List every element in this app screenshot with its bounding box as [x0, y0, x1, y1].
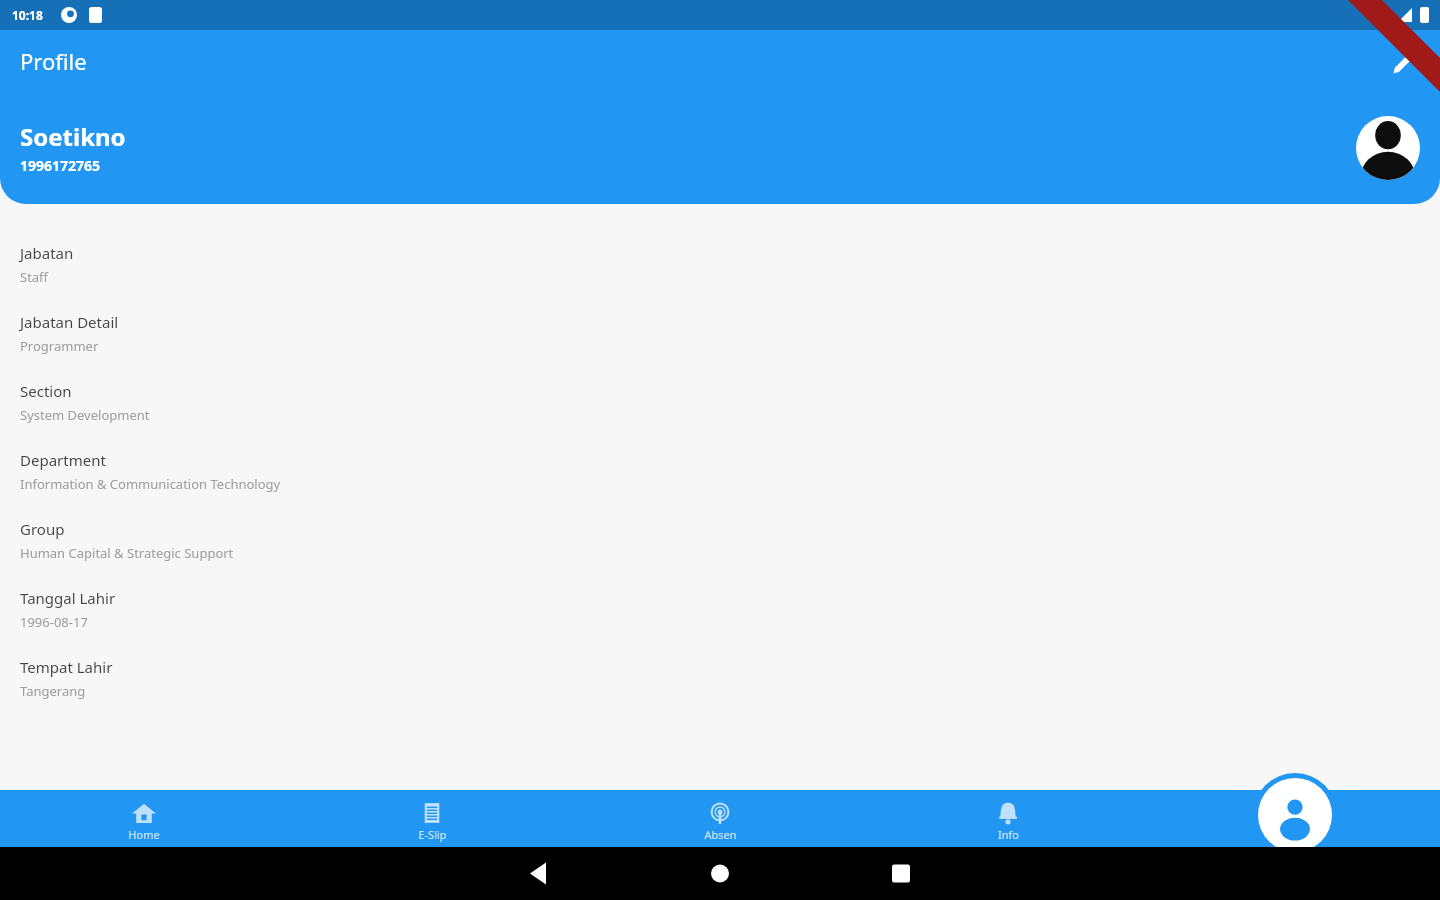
- button[interactable]: Section: [0, 368, 1440, 437]
- button[interactable]: Group: [0, 506, 1440, 575]
- staticText: Section: [20, 381, 72, 401]
- staticText: Profile: [20, 46, 87, 76]
- staticText: Jabatan Detail: [20, 312, 119, 332]
- staticText: Tangerang: [20, 682, 86, 700]
- button[interactable]: Home: [0, 796, 288, 842]
- staticText: Tempat Lahir: [20, 657, 113, 677]
- staticText: Jabatan: [20, 243, 74, 263]
- staticText: 10:18: [12, 7, 43, 23]
- staticText: Information & Communication Technology: [20, 475, 281, 493]
- staticText: Soetikno: [20, 120, 126, 153]
- staticText: Absen: [704, 827, 737, 842]
- staticText: System Development: [20, 406, 150, 424]
- staticText: Human Capital & Strategic Support: [20, 544, 234, 562]
- button[interactable]: Absen: [576, 796, 864, 842]
- staticText: 1996172765: [20, 156, 101, 175]
- button[interactable]: Tempat Lahir: [0, 644, 1440, 713]
- button[interactable]: Department: [0, 437, 1440, 506]
- button[interactable]: Jabatan Detail: [0, 299, 1440, 368]
- staticText: 1996-08-17: [20, 613, 88, 631]
- staticText: E-Slip: [418, 827, 447, 842]
- staticText: Group: [20, 519, 65, 539]
- staticText: Home: [128, 827, 160, 842]
- button[interactable]: E-Slip: [288, 796, 576, 842]
- button[interactable]: Jabatan: [0, 230, 1440, 299]
- button[interactable]: Tanggal Lahir: [0, 575, 1440, 644]
- button[interactable]: Info: [864, 796, 1152, 842]
- button[interactable]: Profile: [1258, 778, 1332, 852]
- button[interactable]: Profile photo: [1356, 116, 1420, 180]
- staticText: Department: [20, 450, 106, 470]
- staticText: Staff: [20, 268, 49, 286]
- staticText: Programmer: [20, 337, 99, 355]
- staticText: Tanggal Lahir: [20, 588, 116, 608]
- staticText: Info: [998, 827, 1019, 842]
- button[interactable]: Edit profile: [1386, 44, 1420, 78]
